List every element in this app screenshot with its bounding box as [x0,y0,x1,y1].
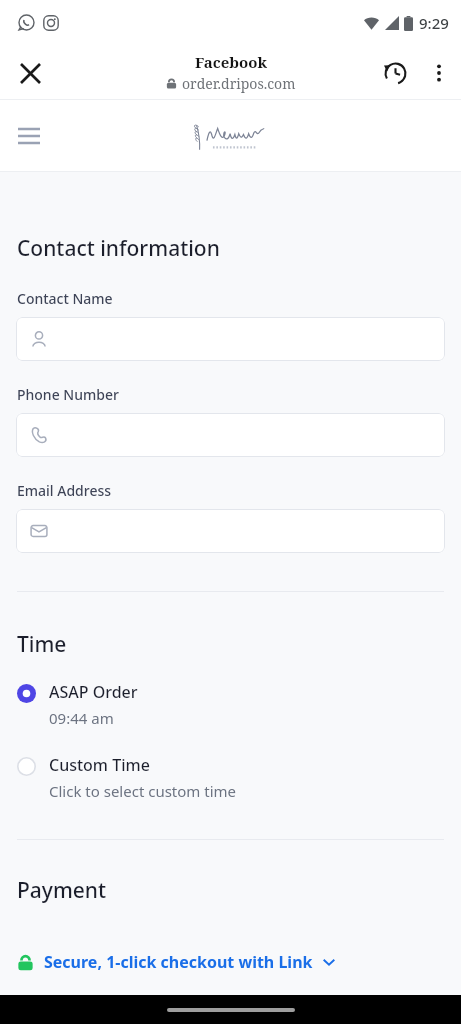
staticText: ASAP Order [49,681,138,703]
button[interactable] [16,317,445,361]
staticText: Contact Name [17,289,113,308]
staticText: Payment [17,876,107,905]
staticText: 09:44 am [49,708,114,728]
button[interactable]: Custom Time [17,754,444,801]
button[interactable] [16,413,445,457]
staticText: Phone Number [17,385,119,404]
button[interactable]: More options [417,51,461,95]
button[interactable]: Close [8,51,52,95]
button[interactable]: Secure, 1-click checkout with Link [17,951,444,973]
staticText: Custom Time [49,754,150,776]
staticText: Click to select custom time [49,781,237,801]
button[interactable] [16,509,445,553]
staticText: Facebook [195,52,267,72]
staticText: Time [17,630,67,659]
staticText: Contact information [17,234,220,263]
staticText: Email Address [17,481,112,500]
staticText: Secure, 1-click checkout with Link [44,951,313,973]
staticText: 9:29 [419,13,449,33]
staticText: order.dripos.com [182,74,296,93]
button[interactable]: ASAP Order [17,681,444,728]
button[interactable]: History [373,51,417,95]
button[interactable]: Menu [8,115,50,157]
